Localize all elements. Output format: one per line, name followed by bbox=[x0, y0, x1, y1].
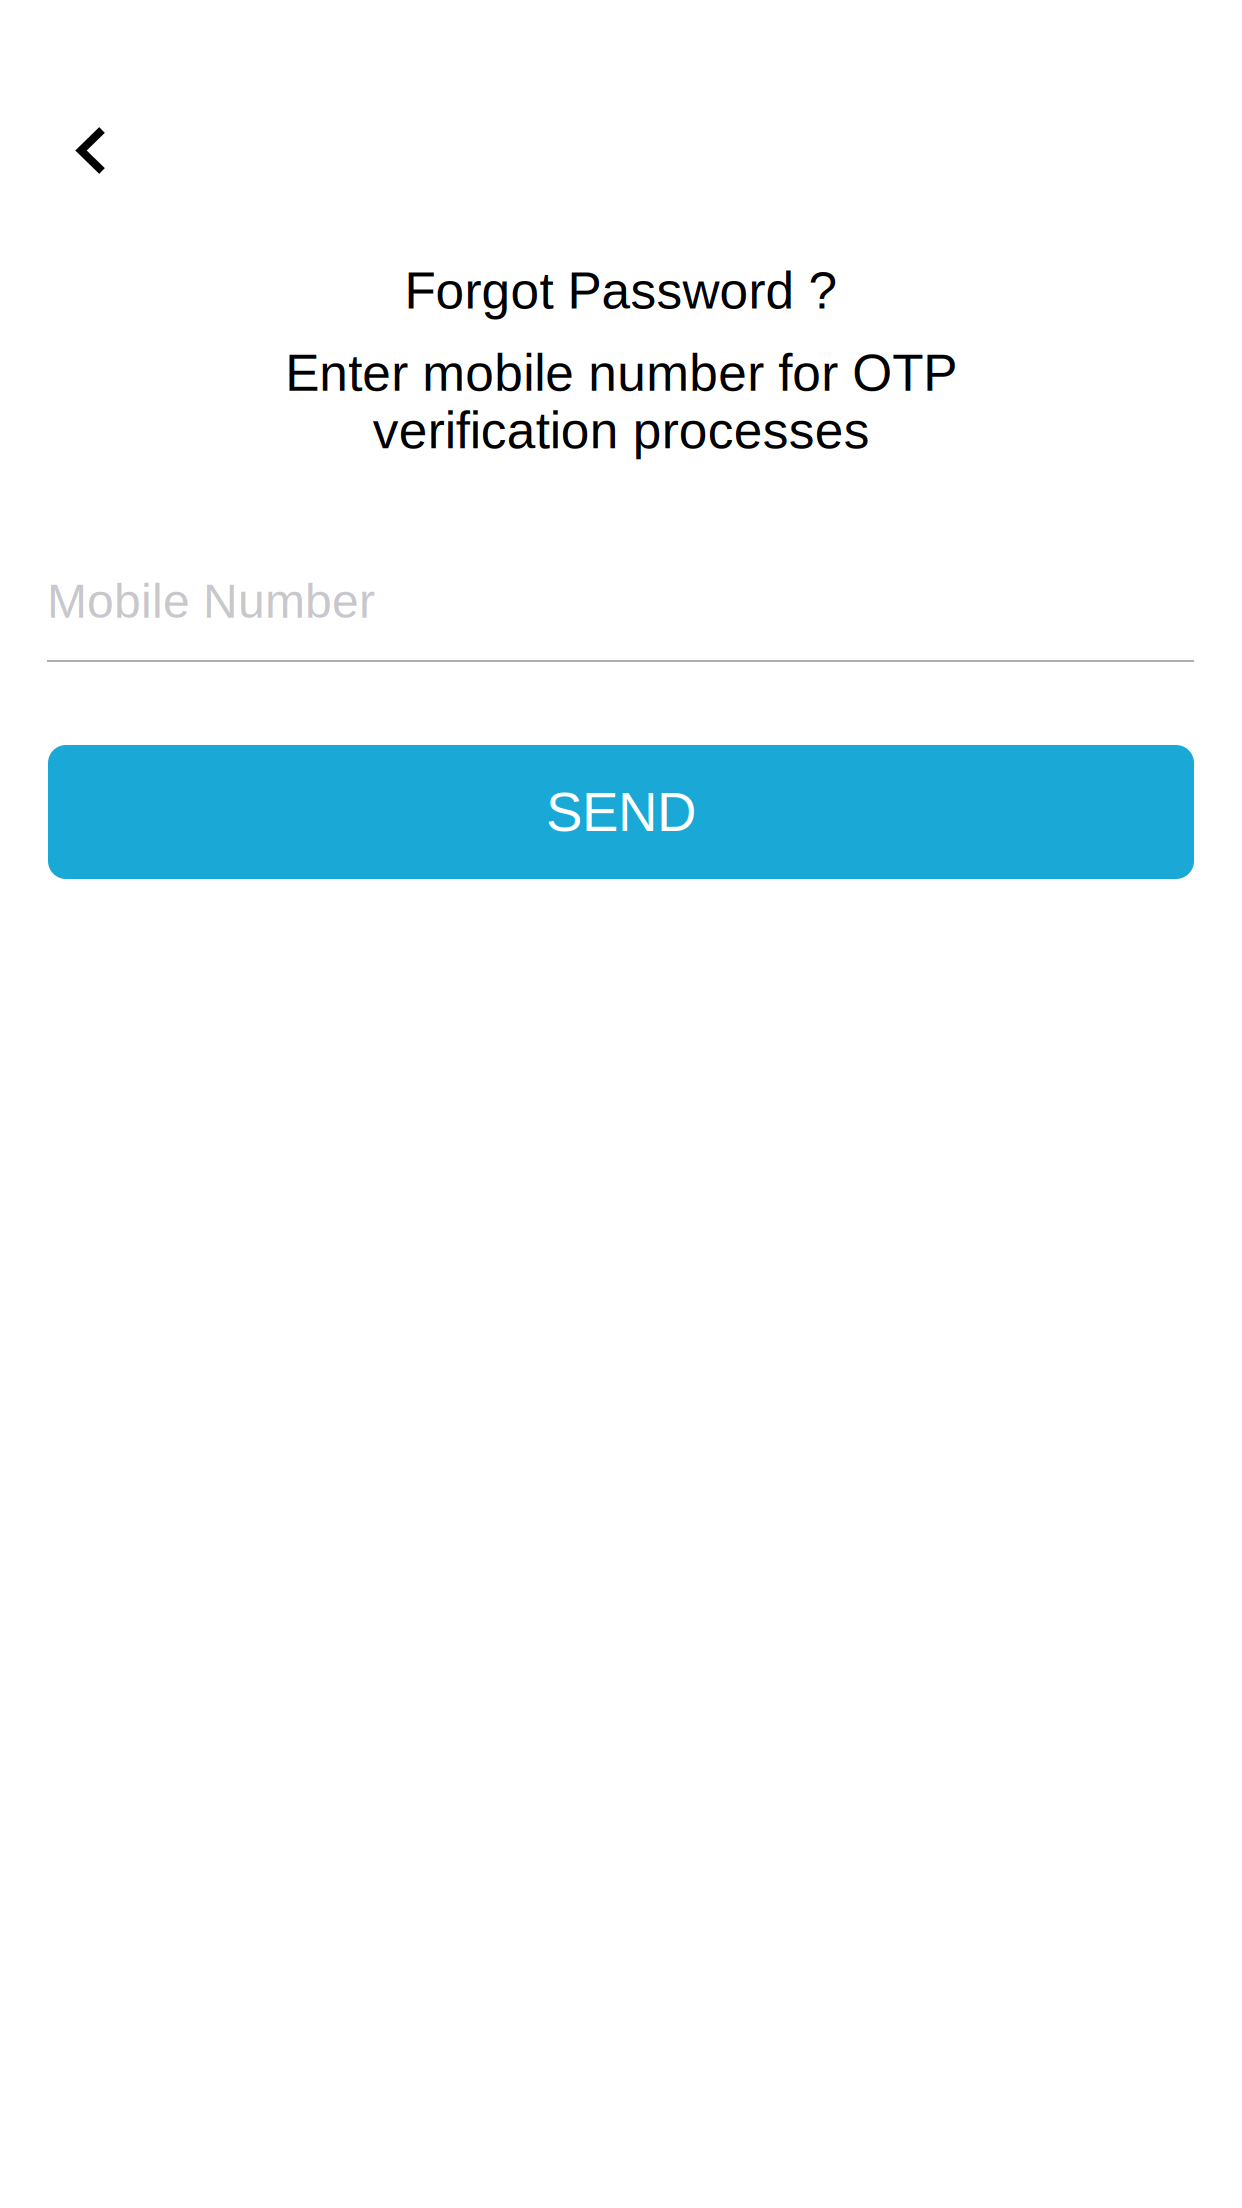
staticText: SEND bbox=[546, 781, 696, 843]
staticText: Forgot Password ? bbox=[404, 262, 837, 319]
button[interactable]: SEND bbox=[48, 745, 1194, 879]
button[interactable]: Mobile Number bbox=[47, 574, 1194, 662]
staticText: Enter mobile number for OTP verification… bbox=[285, 344, 957, 459]
button[interactable]: Back bbox=[35, 94, 147, 206]
staticText: Mobile Number bbox=[47, 574, 375, 628]
